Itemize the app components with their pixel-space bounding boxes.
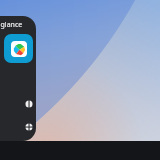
button[interactable]: App shortcut [25,100,33,108]
button[interactable]: App shortcut [25,123,33,131]
staticText: At a glance [0,20,23,30]
button[interactable]: At a glance [0,16,36,141]
button[interactable]: Google Play [4,34,33,63]
